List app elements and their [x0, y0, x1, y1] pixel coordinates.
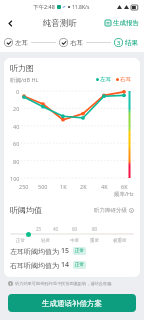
staticText: 0 — [16, 88, 20, 95]
staticText: 轻度 — [41, 238, 50, 244]
staticText: 正常 — [16, 238, 25, 244]
staticText: 500 — [38, 183, 48, 190]
staticText: 右耳 — [120, 76, 131, 83]
staticText: 生成报告 — [113, 19, 139, 27]
staticText: 重度 — [90, 238, 99, 244]
staticText: 4K — [101, 183, 108, 190]
staticText: 结果 — [125, 39, 138, 47]
staticText: 2K — [80, 183, 87, 190]
staticText: 听力图 — [10, 63, 34, 73]
staticText: 右耳听阈均值为 — [10, 261, 59, 270]
staticText: 左耳听阈均值为 — [10, 247, 59, 256]
staticText: 1K — [60, 183, 67, 190]
staticText: 3 — [117, 39, 121, 46]
staticText: 听力障碍分级 — [94, 207, 127, 214]
staticText: 纯音测听 — [43, 18, 77, 29]
staticText: 40 — [13, 123, 20, 130]
button[interactable]: 听力障碍分级 — [94, 207, 134, 214]
staticText: 正常 — [75, 262, 84, 268]
button[interactable]: 左耳 — [4, 38, 28, 47]
staticText: 6K — [121, 183, 128, 190]
button[interactable]: 右耳 — [59, 38, 83, 47]
staticText: 正常 — [75, 248, 84, 254]
staticText: 250 — [19, 183, 29, 190]
staticText: 下午2:48 — [33, 3, 55, 11]
staticText: 60 — [13, 140, 20, 147]
staticText: 25 — [36, 226, 42, 232]
staticText: 频率/Hz — [114, 190, 134, 198]
button[interactable]: 3 — [114, 38, 138, 47]
button[interactable]: Back — [3, 16, 17, 30]
staticText: 80 — [13, 158, 20, 165]
staticText: 15 — [61, 246, 70, 256]
staticText: 听阈/dB HL — [10, 76, 39, 84]
button[interactable]: 生成通话补偿方案 — [8, 294, 136, 312]
button[interactable]: 生成报告 — [104, 17, 140, 29]
staticText: 听阈均值 — [10, 205, 42, 215]
staticText: 左耳 — [100, 76, 111, 83]
staticText: 11.8K/s — [72, 4, 90, 11]
staticText: 14 — [61, 260, 70, 270]
staticText: 听力结果可能受到环境干扰等因素影响，请结合医嘱 — [15, 281, 112, 286]
staticText: 60 — [72, 226, 78, 232]
staticText: 中度 — [70, 238, 79, 244]
staticText: 20 — [13, 105, 20, 112]
staticText: 生成通话补偿方案 — [42, 299, 102, 308]
staticText: 100 — [10, 175, 20, 182]
staticText: 40 — [53, 226, 59, 232]
staticText: 右耳 — [70, 39, 83, 47]
staticText: 极重度 — [113, 238, 127, 244]
staticText: 80 — [92, 226, 98, 232]
staticText: 左耳 — [15, 39, 28, 47]
